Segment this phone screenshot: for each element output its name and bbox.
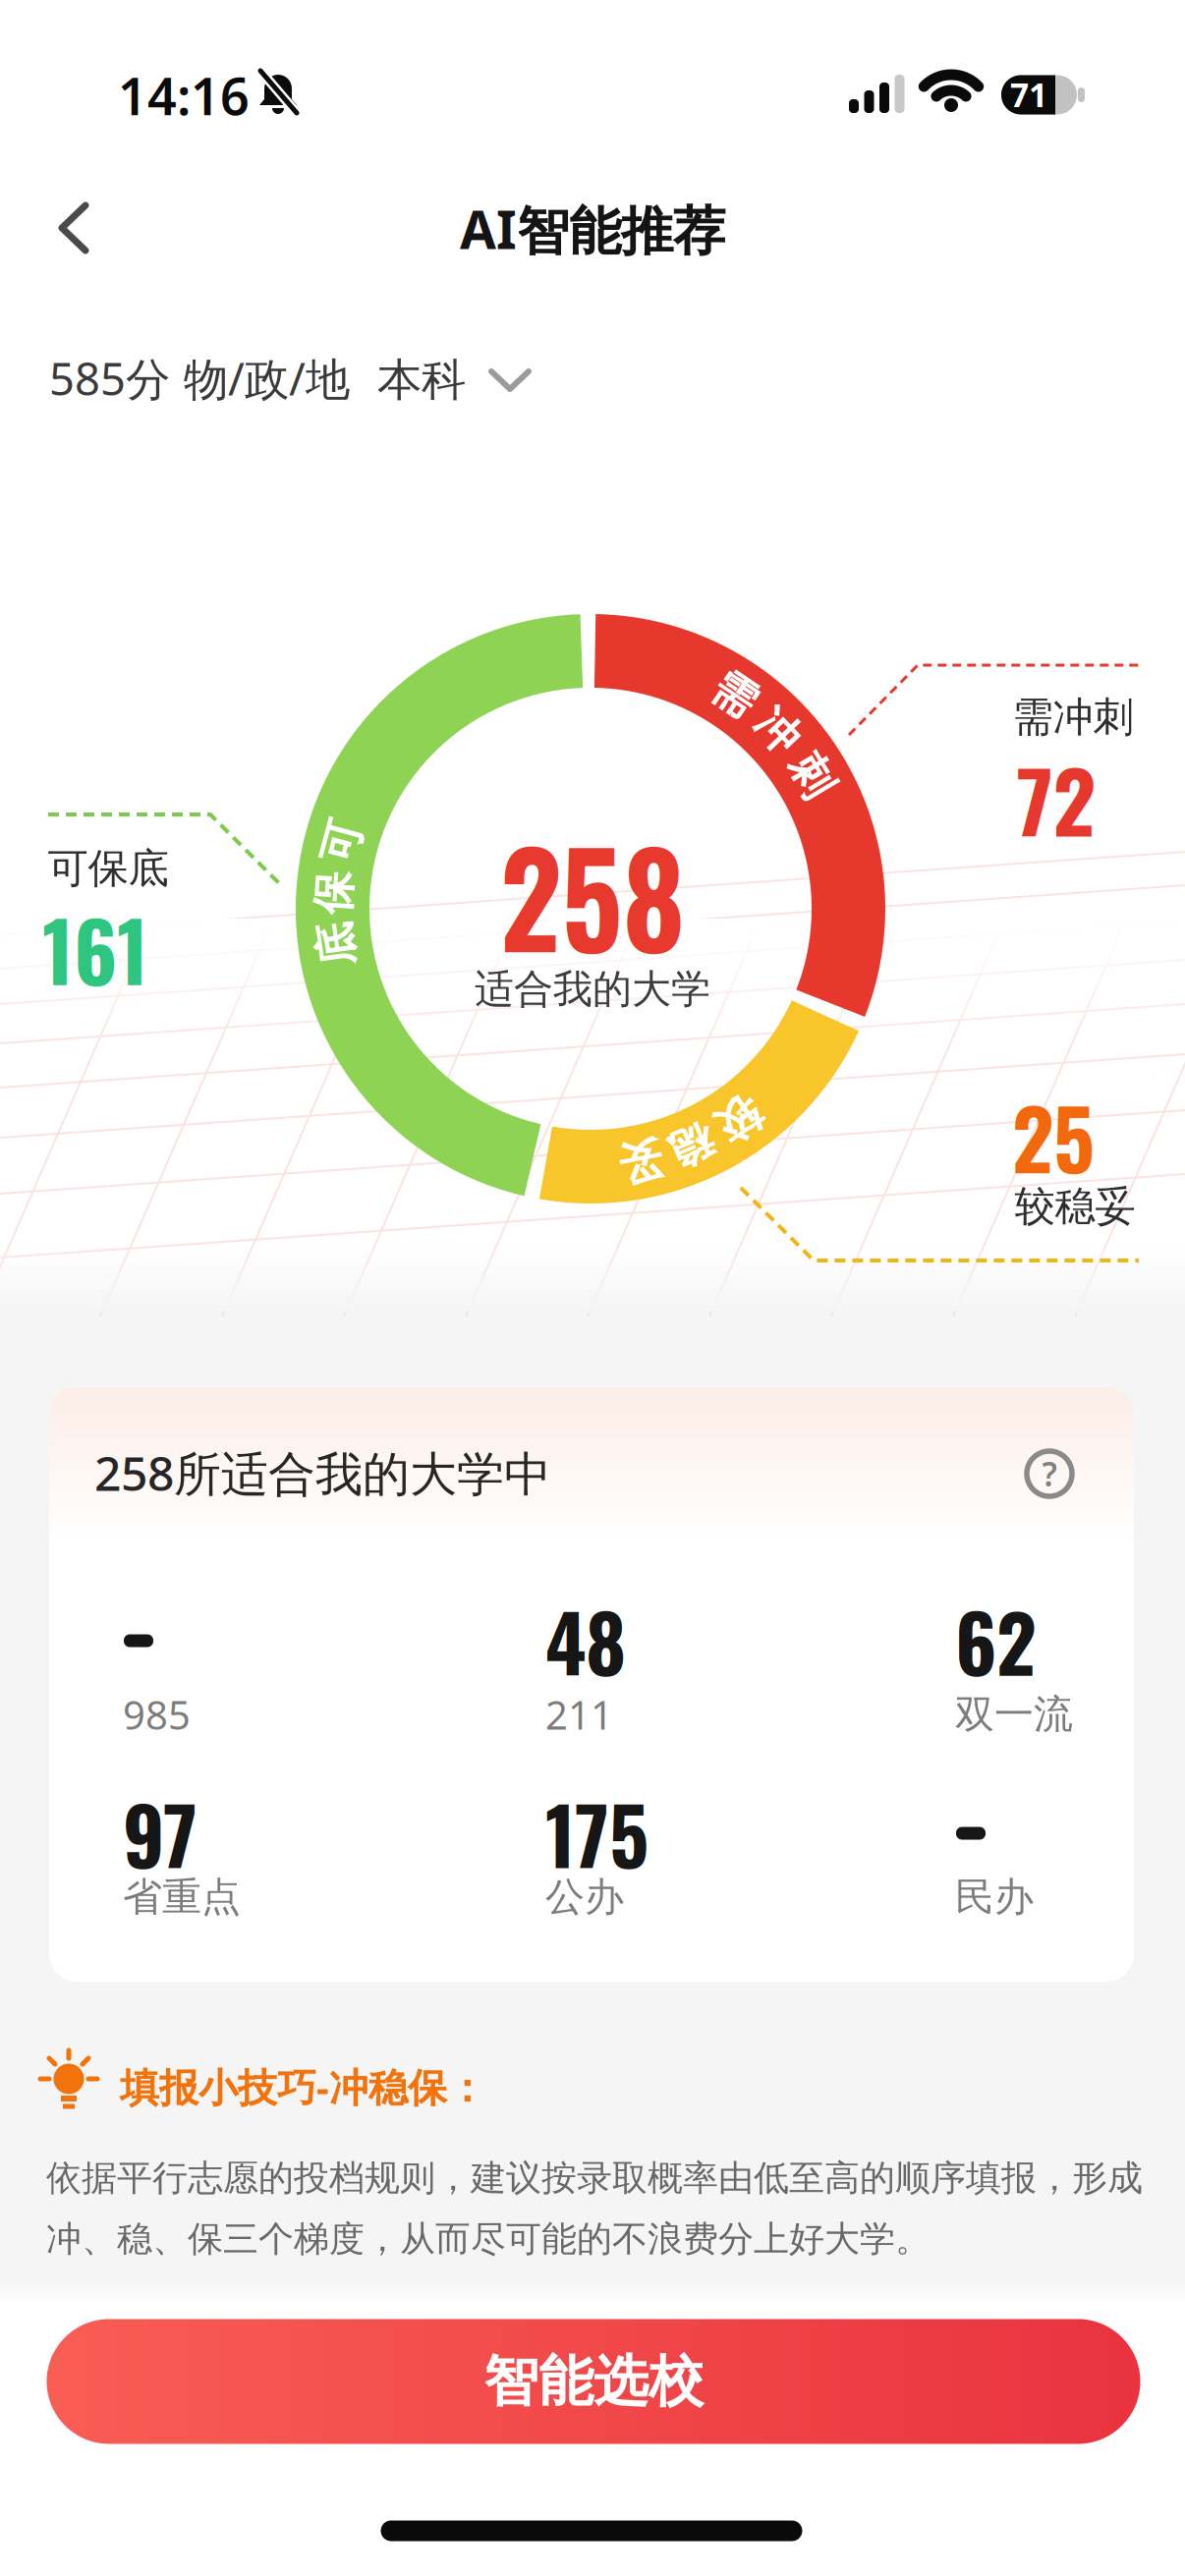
staticText: 72 (1016, 737, 1096, 861)
staticText: 刺 (790, 749, 833, 802)
staticText: 需 (713, 668, 756, 722)
button[interactable]: 585分 物/政/地 本科 (39, 334, 609, 422)
staticText: 智能选校 (483, 2348, 704, 2415)
staticText: 冲 (756, 705, 799, 758)
staticText: 冲、稳、保三个梯度，从而尽可能的不浪费分上好大学。 (46, 2217, 931, 2261)
staticText: 985 (123, 1688, 191, 1740)
staticText: 民办 (955, 1873, 1034, 1921)
staticText: 双一流 (955, 1690, 1073, 1738)
staticText: 较稳妥 (1015, 1182, 1135, 1231)
staticText: 妥 (618, 1135, 661, 1188)
staticText: 依据平行志愿的投档规则，建议按录取概率由低至高的顺序填报，形成 (46, 2156, 1143, 2200)
staticText: 省重点 (123, 1873, 241, 1921)
staticText: 可 (320, 815, 363, 868)
button[interactable]: 帮助 (1022, 1446, 1077, 1501)
staticText: 211 (545, 1688, 613, 1740)
staticText: 较 (717, 1093, 760, 1147)
staticText: 258 (493, 799, 692, 989)
staticText: 公办 (545, 1873, 624, 1921)
staticText: 71 (1010, 73, 1047, 116)
staticText: 可保底 (48, 844, 169, 893)
staticText: 保 (311, 867, 355, 920)
staticText: 585分 物/政/地 本科 (49, 349, 466, 408)
staticText: 底 (314, 918, 357, 971)
staticText: 适合我的大学 (475, 965, 710, 1013)
staticText: 填报小技巧-冲稳保： (120, 2061, 486, 2113)
staticText: ? (1042, 1452, 1057, 1495)
button[interactable]: 智能选校 (47, 2319, 1140, 2444)
staticText: 25 (1012, 1077, 1095, 1197)
staticText: 97 (123, 1776, 197, 1891)
staticText: 258所适合我的大学中 (94, 1441, 551, 1504)
staticText: 175 (545, 1776, 649, 1891)
staticText: AI智能推荐 (460, 194, 725, 264)
staticText: 需冲刺 (1013, 692, 1133, 742)
staticText: 稳 (670, 1120, 713, 1173)
staticText: 48 (545, 1583, 626, 1698)
button[interactable]: 返回 (39, 194, 108, 262)
staticText: 14:16 (118, 61, 250, 129)
staticText: 62 (955, 1583, 1037, 1698)
staticText: 161 (42, 889, 148, 1009)
